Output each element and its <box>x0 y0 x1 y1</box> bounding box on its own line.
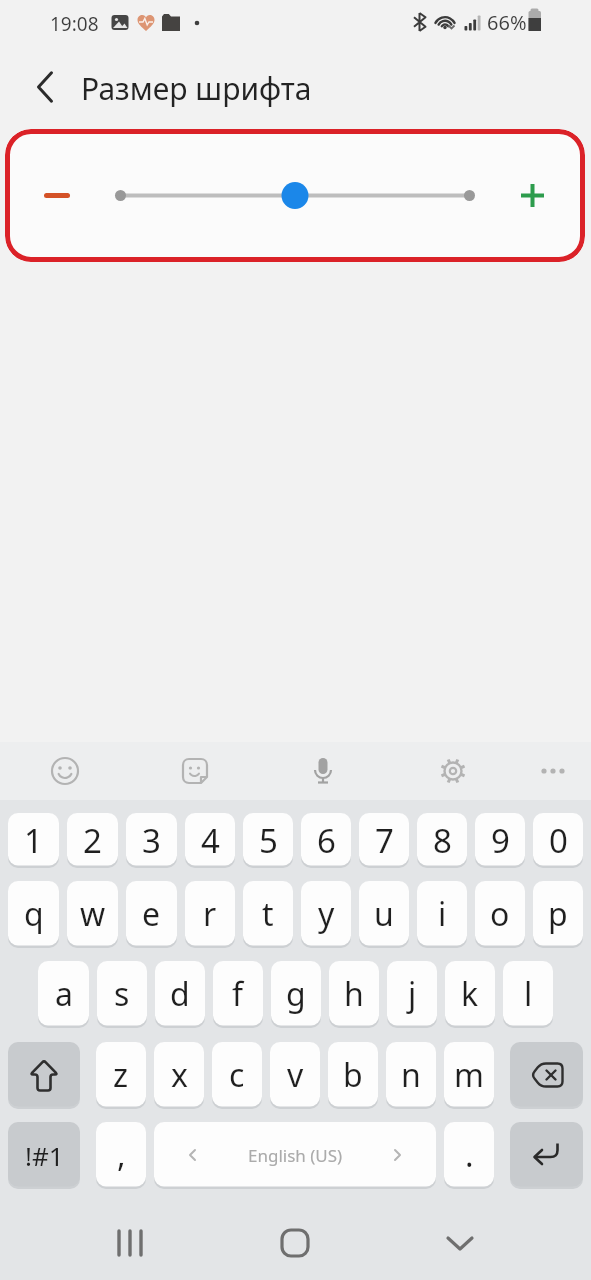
staticText: g <box>286 972 306 1016</box>
button[interactable]: b <box>328 1042 378 1108</box>
staticText: k <box>461 972 479 1016</box>
staticText: 7 <box>375 818 394 863</box>
button[interactable]: English (US) <box>154 1122 436 1188</box>
button[interactable] <box>299 747 347 795</box>
button[interactable]: n <box>386 1042 436 1108</box>
button[interactable]: i <box>417 881 467 947</box>
button[interactable] <box>41 747 89 795</box>
staticText: 19:08 <box>50 11 99 37</box>
staticText: d <box>170 972 190 1016</box>
staticText: a <box>55 972 73 1016</box>
button[interactable] <box>513 175 553 215</box>
button[interactable]: e <box>126 881 177 947</box>
button[interactable] <box>529 747 577 795</box>
button[interactable]: . <box>444 1122 494 1188</box>
staticText: x <box>171 1053 188 1097</box>
button[interactable]: l <box>503 961 553 1027</box>
staticText: y <box>318 892 335 936</box>
button[interactable]: f <box>213 961 263 1027</box>
staticText: e <box>142 892 161 936</box>
button[interactable]: p <box>533 881 583 947</box>
button[interactable] <box>110 175 480 215</box>
staticText: j <box>408 972 417 1016</box>
button[interactable]: m <box>444 1042 494 1108</box>
button[interactable]: g <box>271 961 321 1027</box>
staticText: s <box>114 972 130 1016</box>
button[interactable] <box>8 1042 80 1108</box>
button[interactable] <box>510 1042 583 1108</box>
button[interactable] <box>430 1220 490 1266</box>
staticText: p <box>548 892 568 936</box>
button[interactable]: s <box>97 961 147 1027</box>
staticText: h <box>344 972 364 1016</box>
button[interactable]: c <box>212 1042 262 1108</box>
button[interactable]: k <box>445 961 495 1027</box>
staticText: v <box>287 1053 304 1097</box>
button[interactable] <box>100 1220 160 1266</box>
staticText: 1 <box>24 818 43 863</box>
staticText: , <box>117 1133 126 1177</box>
button[interactable]: o <box>475 881 525 947</box>
staticText: 66% <box>487 9 527 36</box>
staticText: Размер шрифта <box>81 68 312 109</box>
button[interactable] <box>23 65 67 109</box>
staticText: !#1 <box>25 1138 64 1173</box>
button[interactable]: 4 <box>185 813 235 867</box>
staticText: b <box>343 1053 363 1097</box>
staticText: l <box>524 972 533 1016</box>
staticText: m <box>454 1053 484 1097</box>
button[interactable]: x <box>154 1042 204 1108</box>
button[interactable]: z <box>96 1042 146 1108</box>
button[interactable]: 6 <box>301 813 351 867</box>
button[interactable]: 9 <box>475 813 525 867</box>
button[interactable]: 1 <box>8 813 59 867</box>
staticText: 9 <box>491 818 510 863</box>
button[interactable]: d <box>155 961 205 1027</box>
staticText: n <box>401 1053 421 1097</box>
button[interactable]: a <box>38 961 89 1027</box>
staticText: w <box>80 892 106 936</box>
button[interactable]: y <box>301 881 351 947</box>
staticText: 4 <box>201 818 220 863</box>
staticText: f <box>232 972 244 1016</box>
button[interactable]: 7 <box>359 813 409 867</box>
staticText: t <box>262 892 274 936</box>
staticText: . <box>465 1133 474 1177</box>
button[interactable]: j <box>387 961 437 1027</box>
button[interactable]: u <box>359 881 409 947</box>
staticText: r <box>203 892 217 936</box>
staticText: i <box>438 892 447 936</box>
staticText: u <box>374 892 394 936</box>
staticText: 0 <box>549 818 568 863</box>
staticText: c <box>229 1053 245 1097</box>
staticText: z <box>113 1053 129 1097</box>
button[interactable]: 3 <box>126 813 177 867</box>
button[interactable]: , <box>96 1122 146 1188</box>
staticText: 8 <box>433 818 452 863</box>
button[interactable]: 5 <box>243 813 293 867</box>
staticText: English (US) <box>248 1144 343 1167</box>
button[interactable] <box>29 175 69 215</box>
button[interactable] <box>429 747 477 795</box>
button[interactable]: w <box>67 881 118 947</box>
staticText: 3 <box>142 818 161 863</box>
staticText: 2 <box>83 818 102 863</box>
button[interactable]: v <box>270 1042 320 1108</box>
button[interactable]: 2 <box>67 813 118 867</box>
staticText: 5 <box>259 818 278 863</box>
button[interactable] <box>510 1122 583 1188</box>
button[interactable]: 8 <box>417 813 467 867</box>
button[interactable] <box>171 747 219 795</box>
button[interactable] <box>265 1220 325 1266</box>
button[interactable]: h <box>329 961 379 1027</box>
button[interactable]: q <box>8 881 59 947</box>
staticText: 6 <box>317 818 336 863</box>
button[interactable]: r <box>185 881 235 947</box>
button[interactable]: t <box>243 881 293 947</box>
staticText: o <box>490 892 510 936</box>
button[interactable]: !#1 <box>8 1122 80 1188</box>
staticText: q <box>24 892 44 936</box>
button[interactable]: 0 <box>533 813 583 867</box>
